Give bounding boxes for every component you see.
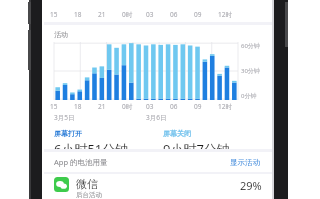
staticText: 15	[50, 102, 58, 111]
staticText: 0分钟	[241, 92, 257, 100]
button[interactable]: 微信	[44, 174, 272, 199]
staticText: 3月6日	[146, 113, 167, 122]
staticText: 9小时7分钟	[163, 140, 230, 149]
button[interactable]: 屏幕打开	[54, 129, 163, 149]
staticText: App 的电池用量	[54, 157, 228, 167]
staticText: 09	[194, 102, 202, 111]
staticText: 后台活动	[76, 191, 102, 199]
staticText: 12时	[218, 102, 232, 111]
button[interactable]: 显示活动	[228, 156, 262, 169]
staticText: 30分钟	[241, 67, 260, 75]
staticText: 06	[170, 10, 178, 19]
staticText: 18	[74, 102, 82, 111]
staticText: 03	[146, 102, 154, 111]
staticText: 6小时51分钟	[54, 140, 129, 149]
staticText: 29%	[240, 178, 262, 193]
staticText: 12时	[218, 10, 232, 19]
staticText: 21	[98, 10, 106, 19]
staticText: 微信	[76, 177, 98, 191]
staticText: 06	[170, 102, 178, 111]
button[interactable]: 屏幕关闭	[163, 129, 272, 149]
staticText: 15	[50, 10, 58, 19]
staticText: 屏幕关闭	[163, 129, 191, 138]
staticText: 18	[74, 10, 82, 19]
staticText: 3月5日	[54, 113, 75, 122]
staticText: 0时	[122, 10, 133, 19]
staticText: 0时	[122, 102, 133, 111]
staticText: 显示活动	[230, 158, 260, 167]
staticText: 09	[194, 10, 202, 19]
staticText: 活动	[54, 30, 68, 39]
staticText: 60分钟	[241, 42, 260, 50]
staticText: 21	[98, 102, 106, 111]
staticText: 屏幕打开	[54, 129, 82, 138]
staticText: 03	[146, 10, 154, 19]
